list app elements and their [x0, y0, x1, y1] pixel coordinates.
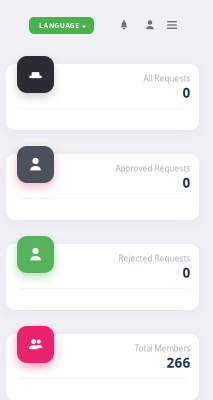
staticText: Approved Requests [115, 163, 190, 174]
button[interactable]: Notifications [115, 16, 133, 34]
staticText: 0 [182, 264, 190, 281]
staticText: 266 [166, 354, 190, 371]
staticText: Total Members [134, 343, 190, 354]
staticText: All Requests [143, 73, 190, 84]
button[interactable]: Approved Requests [6, 154, 199, 220]
button[interactable]: LANGUAGE [29, 17, 94, 34]
button[interactable]: Menu [163, 16, 181, 34]
button[interactable]: Rejected Requests [6, 244, 199, 310]
button[interactable]: Total Members [6, 334, 199, 400]
button[interactable]: All Requests [6, 64, 199, 130]
staticText: 0 [182, 84, 190, 101]
staticText: LANGUAGE [39, 21, 79, 30]
button[interactable]: Profile [141, 16, 159, 34]
staticText: Rejected Requests [118, 253, 190, 264]
staticText: 0 [182, 174, 190, 191]
